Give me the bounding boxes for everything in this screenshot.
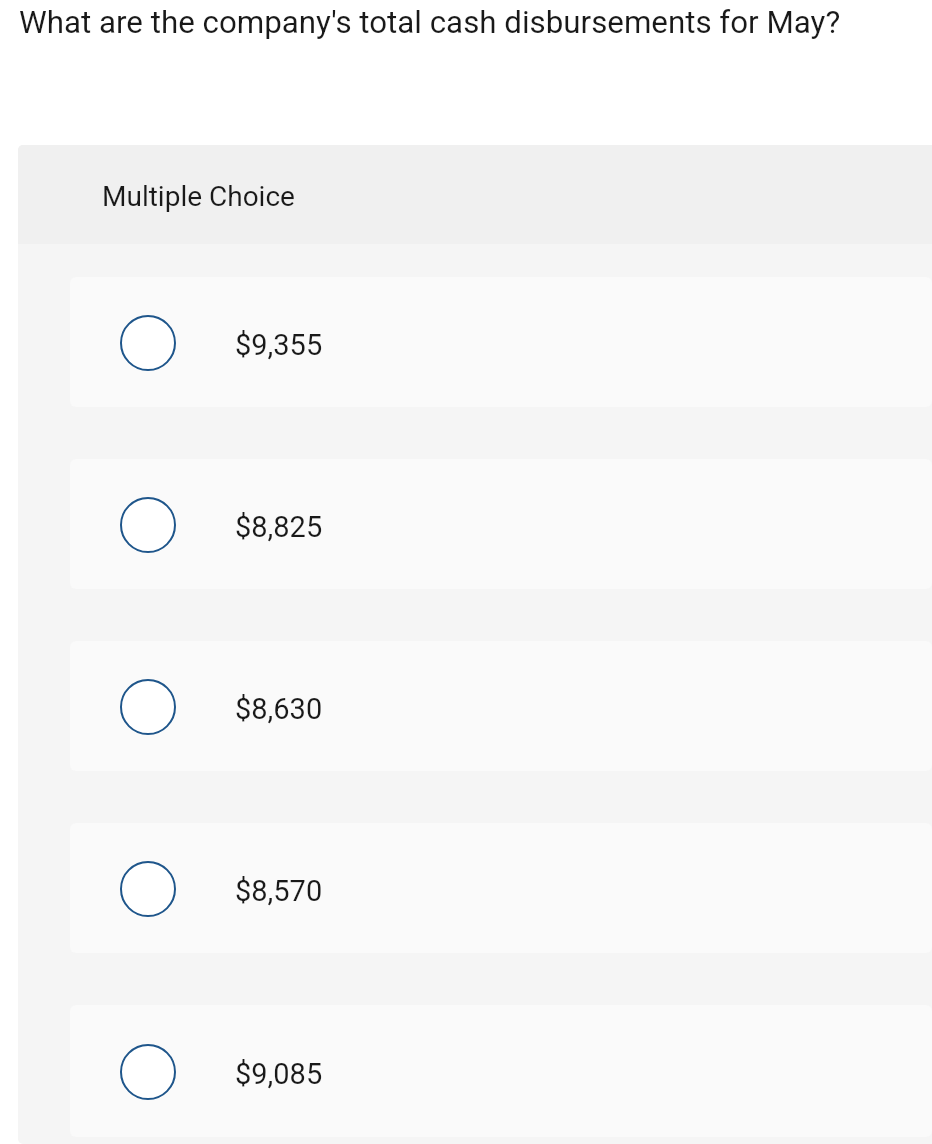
staticText: $8,570 (235, 874, 323, 908)
other: Select $8,570 (120, 860, 176, 916)
button[interactable]: Select $8,570 (70, 823, 932, 953)
button[interactable]: Select $9,085 (70, 1005, 932, 1137)
staticText: What are the company's total cash disbur… (19, 4, 841, 41)
other: Select $8,630 (120, 678, 176, 734)
staticText: $9,355 (235, 328, 323, 362)
other: Select $9,355 (120, 314, 176, 370)
staticText: Multiple Choice (102, 180, 295, 213)
staticText: $9,085 (235, 1057, 323, 1091)
staticText: $8,825 (235, 510, 323, 544)
button[interactable]: Select $9,355 (70, 277, 932, 407)
button[interactable]: Select $8,825 (70, 459, 932, 589)
other: Select $9,085 (120, 1043, 176, 1099)
staticText: $8,630 (235, 692, 323, 726)
button[interactable]: Select $8,630 (70, 641, 932, 771)
other: Select $8,825 (120, 496, 176, 552)
